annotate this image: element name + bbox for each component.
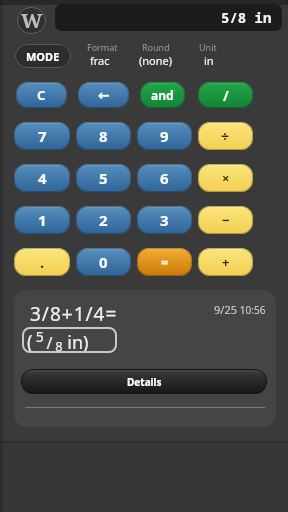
button[interactable]: 0: [76, 248, 131, 276]
staticText: in: [204, 53, 214, 68]
button[interactable]: C: [16, 82, 67, 108]
button[interactable]: .: [14, 248, 70, 276]
button[interactable]: /: [198, 82, 253, 108]
staticText: 3: [160, 210, 169, 230]
staticText: 6: [160, 168, 169, 188]
button[interactable]: ←: [78, 82, 129, 108]
button[interactable]: W: [17, 7, 46, 34]
staticText: MODE: [26, 49, 60, 64]
button[interactable]: 4: [14, 164, 70, 192]
staticText: 0: [99, 252, 108, 272]
staticText: −: [222, 211, 230, 229]
button[interactable]: and: [140, 82, 185, 108]
button[interactable]: 5: [76, 164, 131, 192]
button[interactable]: 3: [137, 206, 192, 234]
button[interactable]: Details: [21, 369, 267, 394]
button[interactable]: ×: [198, 164, 253, 192]
staticText: 9: [160, 126, 169, 146]
button[interactable]: =: [137, 248, 192, 276]
staticText: /: [223, 86, 229, 105]
staticText: +: [222, 253, 230, 271]
staticText: .: [40, 252, 45, 272]
staticText: 4: [38, 168, 47, 188]
staticText: 5/8 in: [221, 8, 272, 27]
staticText: 7: [38, 126, 47, 146]
staticText: 5: [99, 168, 108, 188]
staticText: frac: [90, 53, 110, 68]
staticText: Details: [127, 375, 162, 389]
staticText: (none): [139, 53, 173, 68]
button[interactable]: MODE: [15, 44, 71, 68]
staticText: W: [21, 7, 43, 34]
button[interactable]: 1: [14, 206, 70, 234]
staticText: ÷: [221, 127, 230, 146]
button[interactable]: ÷: [198, 122, 253, 150]
staticText: =: [161, 253, 169, 271]
staticText: Unit: [199, 41, 217, 53]
staticText: 1: [38, 210, 47, 230]
staticText: 9/25 10:56: [214, 302, 266, 317]
staticText: and: [151, 87, 174, 103]
staticText: Format: [87, 41, 118, 53]
button[interactable]: 2: [76, 206, 131, 234]
staticText: ←: [98, 87, 110, 103]
staticText: 3/8+1/4=: [30, 301, 118, 327]
staticText: C: [37, 86, 46, 104]
staticText: ×: [222, 169, 230, 187]
button[interactable]: 6: [137, 164, 192, 192]
staticText: 8: [99, 126, 108, 146]
button[interactable]: −: [198, 206, 253, 234]
staticText: ( 5 / 8 in): [27, 327, 89, 353]
staticText: Round: [142, 41, 170, 53]
staticText: 2: [99, 210, 108, 230]
button[interactable]: 9: [137, 122, 192, 150]
button[interactable]: +: [198, 248, 253, 276]
button[interactable]: 8: [76, 122, 131, 150]
button[interactable]: 7: [14, 122, 70, 150]
